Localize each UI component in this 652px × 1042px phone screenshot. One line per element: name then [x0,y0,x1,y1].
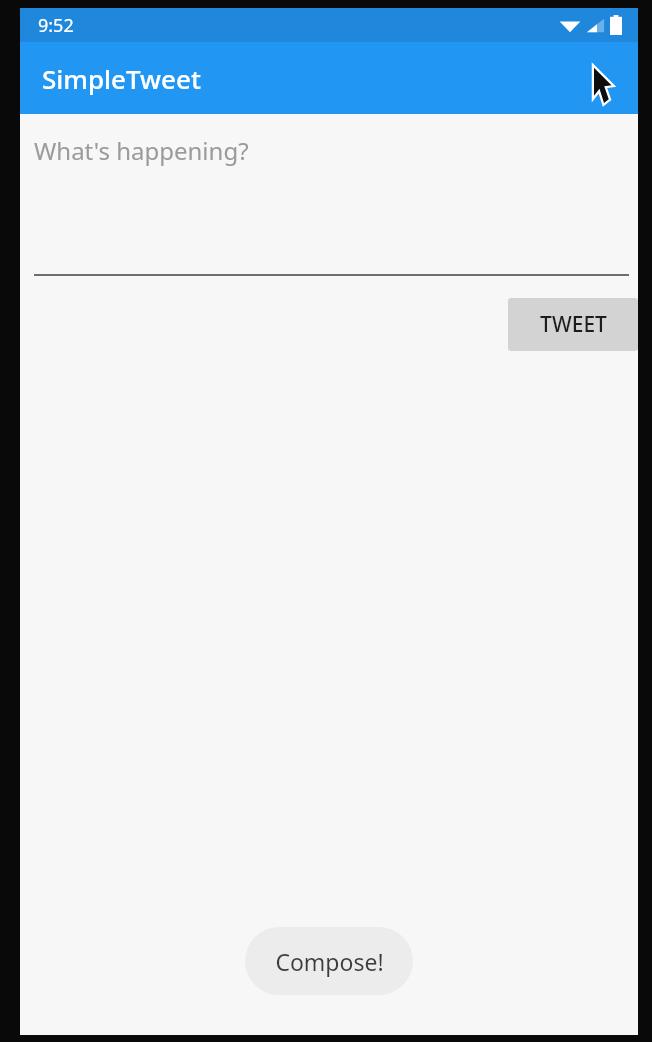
staticText: SimpleTweet [42,61,201,96]
other: Battery [610,15,622,35]
staticText: Compose! [275,946,384,977]
button[interactable]: TWEET [508,298,638,351]
other: Cellular signal [586,17,605,34]
other: Wi-Fi signal [559,17,581,34]
staticText: What's happening? [34,134,249,167]
staticText: 9:52 [38,13,74,38]
button[interactable]: What's happening? [34,114,629,276]
staticText: TWEET [540,310,607,339]
button[interactable]: Compose! [245,927,413,995]
